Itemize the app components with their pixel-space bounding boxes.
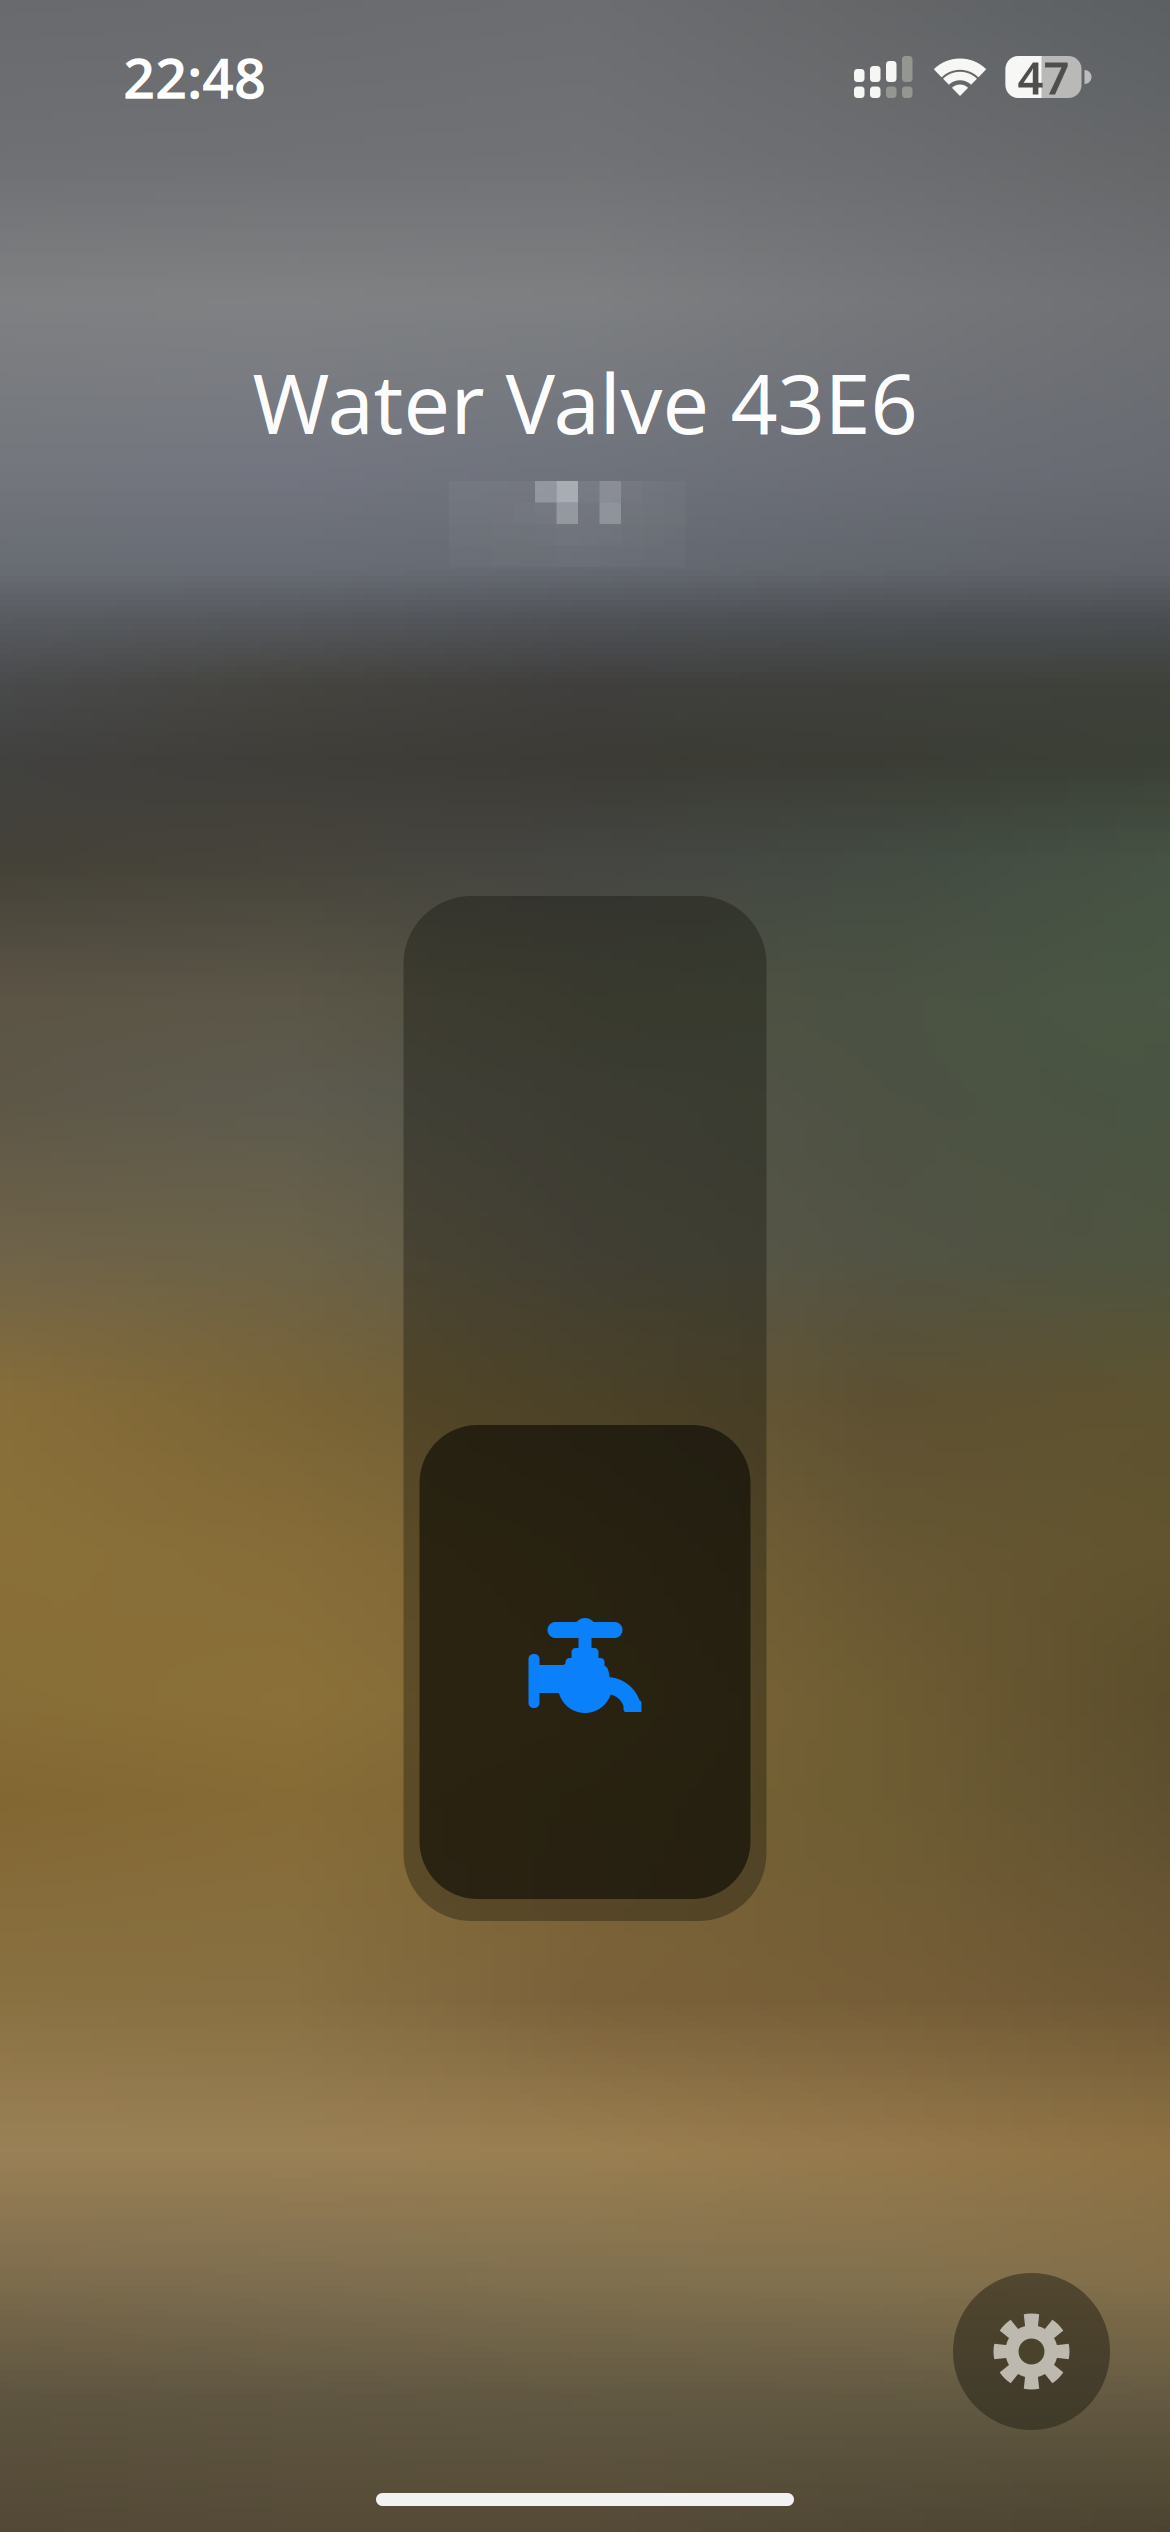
staticText: 47	[1017, 47, 1069, 107]
staticText: Water Valve 43E6	[252, 347, 917, 457]
button[interactable]: Settings	[953, 2273, 1110, 2430]
staticText: 22:48	[123, 40, 266, 114]
